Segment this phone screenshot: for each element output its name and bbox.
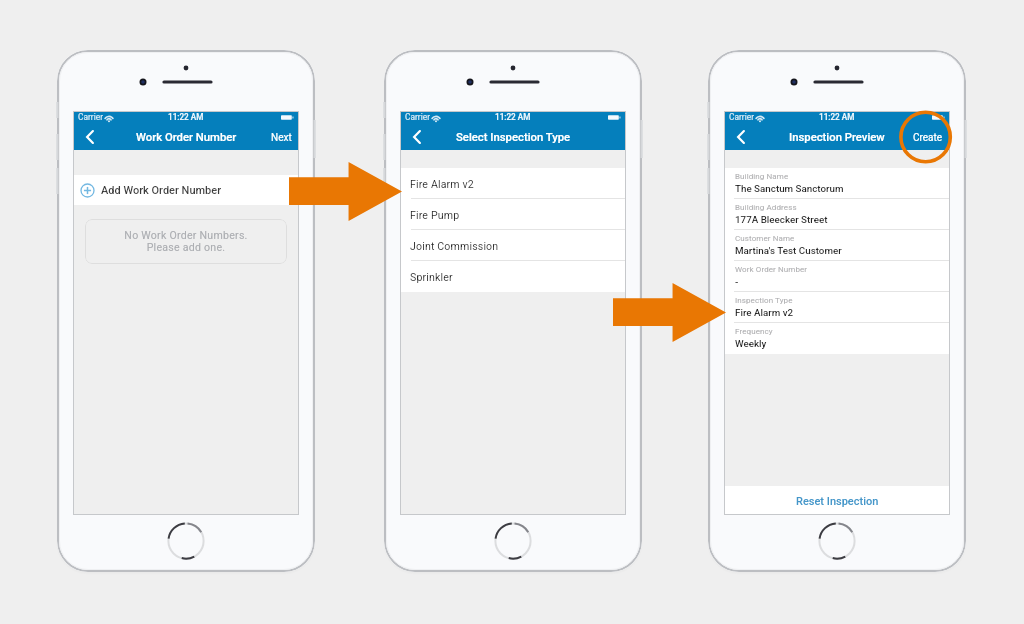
button[interactable]: Building Name — [724, 168, 950, 199]
staticText: Create — [913, 132, 943, 144]
button[interactable]: Sprinkler — [400, 261, 626, 292]
button[interactable]: Inspection Type — [724, 292, 950, 323]
staticText: Carrier — [729, 112, 755, 122]
button[interactable]: Frequency — [724, 323, 950, 354]
button[interactable]: Add Work Order Number — [73, 175, 299, 205]
staticText: Building Name — [735, 172, 789, 181]
staticText: Fire Alarm v2 — [735, 307, 794, 318]
button[interactable]: Next — [264, 125, 299, 150]
staticText: 11:22 AM — [495, 112, 531, 122]
staticText: Carrier — [405, 112, 431, 122]
staticText: Weekly — [735, 338, 767, 349]
staticText: Sprinkler — [410, 271, 453, 283]
button[interactable]: Create — [906, 125, 950, 150]
button[interactable]: Fire Pump — [400, 199, 626, 230]
button[interactable]: Fire Alarm v2 — [400, 168, 626, 199]
staticText: Martina's Test Customer — [735, 245, 842, 256]
button[interactable]: Back — [724, 125, 756, 150]
staticText: Inspection Preview — [789, 131, 885, 144]
staticText: Next — [271, 132, 292, 144]
staticText: 11:22 AM — [819, 112, 855, 122]
staticText: No Work Order Numbers. Please add one. — [124, 229, 248, 254]
staticText: Work Order Number — [136, 131, 237, 144]
staticText: Reset Inspection — [796, 495, 879, 508]
staticText: 177A Bleecker Street — [735, 214, 828, 225]
staticText: Building Address — [735, 203, 797, 212]
button[interactable]: Back — [400, 125, 432, 150]
button[interactable]: Building Address — [724, 199, 950, 230]
staticText: Work Order Number — [735, 265, 808, 274]
staticText: Inspection Type — [735, 296, 793, 305]
staticText: 11:22 AM — [168, 112, 204, 122]
staticText: The Sanctum Sanctorum — [735, 183, 844, 194]
staticText: Select Inspection Type — [456, 131, 571, 144]
staticText: Add Work Order Number — [101, 184, 222, 197]
staticText: - — [735, 276, 739, 287]
button[interactable]: Back — [73, 125, 105, 150]
staticText: Fire Alarm v2 — [410, 178, 474, 190]
staticText: Joint Commission — [410, 240, 499, 252]
button[interactable]: Reset Inspection — [724, 486, 950, 515]
staticText: Customer Name — [735, 234, 795, 243]
staticText: Frequency — [735, 327, 773, 336]
staticText: Carrier — [78, 112, 104, 122]
button[interactable]: Joint Commission — [400, 230, 626, 261]
button[interactable]: Customer Name — [724, 230, 950, 261]
button[interactable]: Work Order Number — [724, 261, 950, 292]
staticText: Fire Pump — [410, 209, 460, 221]
